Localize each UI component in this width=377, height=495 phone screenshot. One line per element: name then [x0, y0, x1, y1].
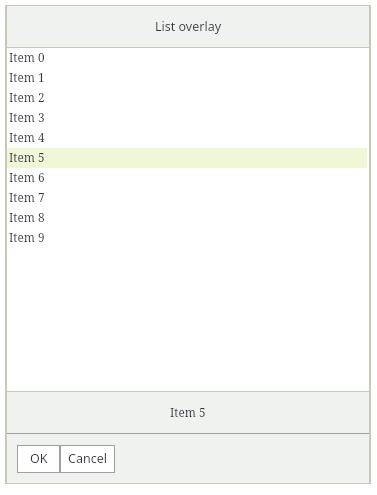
button[interactable]: Item 6: [7, 168, 367, 188]
staticText: Item 1: [9, 69, 45, 85]
staticText: OK: [30, 450, 48, 467]
button[interactable]: Item 0: [7, 48, 367, 68]
staticText: Item 9: [9, 229, 45, 245]
staticText: Item 5: [170, 404, 206, 420]
button[interactable]: Item 3: [7, 108, 367, 128]
button[interactable]: Item 1: [7, 68, 367, 88]
staticText: Item 4: [9, 129, 45, 145]
button[interactable]: Cancel: [61, 446, 114, 472]
staticText: List overlay: [155, 18, 222, 35]
staticText: Item 5: [9, 149, 45, 165]
button[interactable]: Item 4: [7, 128, 367, 148]
button[interactable]: Item 2: [7, 88, 367, 108]
button[interactable]: Item 5: [7, 148, 367, 168]
staticText: Item 3: [9, 109, 45, 125]
button[interactable]: Item 7: [7, 188, 367, 208]
staticText: Item 7: [9, 189, 45, 205]
staticText: Item 2: [9, 89, 45, 105]
staticText: Item 0: [9, 49, 45, 65]
button[interactable]: OK: [18, 446, 59, 472]
staticText: Item 6: [9, 169, 45, 185]
staticText: Cancel: [68, 450, 107, 467]
staticText: Item 8: [9, 209, 45, 225]
button[interactable]: Item 9: [7, 228, 367, 248]
button[interactable]: Item 8: [7, 208, 367, 228]
